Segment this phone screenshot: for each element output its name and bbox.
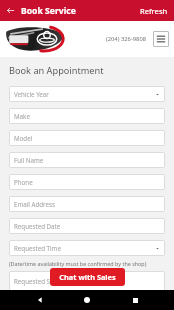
button[interactable]: Dealer home — [5, 26, 65, 52]
staticText: Phone — [14, 178, 33, 186]
button[interactable]: Back — [32, 292, 48, 308]
button[interactable]: Make — [9, 108, 165, 124]
staticText: Book Service — [21, 5, 76, 17]
button[interactable]: Menu — [153, 31, 169, 47]
button[interactable]: Full Name — [9, 152, 165, 168]
staticText: Chat with Sales — [59, 272, 116, 282]
button[interactable]: (204) 326-9808 — [103, 32, 150, 46]
button[interactable]: Chat with Sales — [50, 268, 125, 286]
staticText: Model — [14, 134, 33, 142]
button[interactable]: Back — [0, 0, 21, 21]
button[interactable]: Requested Time — [9, 240, 165, 256]
staticText: Vehicle Year — [14, 90, 49, 98]
button[interactable]: Model — [9, 130, 165, 146]
staticText: Book an Appointment — [9, 64, 104, 77]
button[interactable]: Phone — [9, 174, 165, 190]
staticText: Full Name — [14, 156, 44, 164]
button[interactable]: Requested Date — [9, 218, 165, 234]
staticText: (204) 326-9808 — [106, 35, 147, 43]
staticText: Requested Service — [14, 277, 68, 285]
button[interactable]: Home — [79, 292, 95, 308]
staticText: (Date/time availability must be confirme… — [9, 260, 147, 267]
button[interactable]: Requested Service — [9, 271, 165, 291]
staticText: Email Address — [14, 200, 55, 208]
staticText: Requested Time — [14, 244, 61, 252]
button[interactable]: Vehicle Year — [9, 86, 165, 102]
button[interactable]: Refresh — [134, 2, 174, 20]
staticText: Make — [14, 112, 30, 120]
staticText: Requested Date — [14, 222, 61, 230]
staticText: Refresh — [140, 6, 168, 16]
button[interactable]: Recent apps — [127, 292, 143, 308]
button[interactable]: Email Address — [9, 196, 165, 212]
